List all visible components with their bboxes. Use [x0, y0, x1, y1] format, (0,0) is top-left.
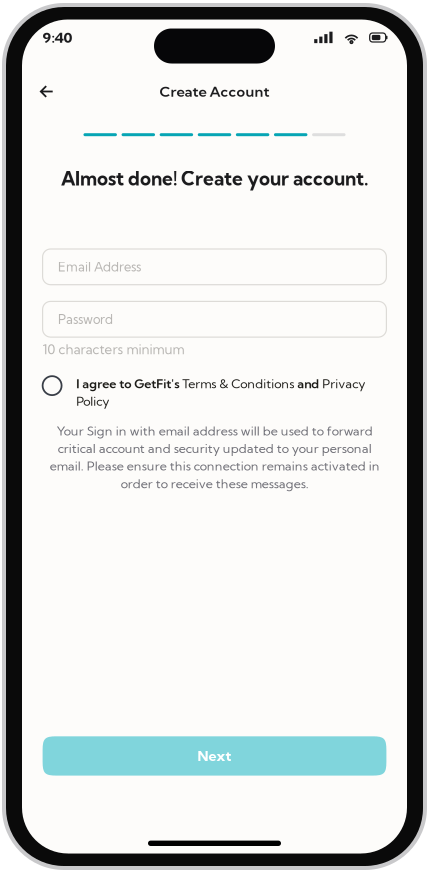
staticText: Your Sign in with email address will be …	[49, 423, 379, 491]
staticText: Email Address	[58, 259, 141, 275]
staticText: I agree to GetFit's Terms & Conditions a…	[76, 376, 365, 409]
staticText: Create Account	[159, 82, 269, 101]
button[interactable]: Back	[30, 76, 62, 106]
button[interactable]: I agree to GetFit's Terms & Conditions a…	[43, 376, 386, 409]
staticText: Next	[197, 747, 231, 765]
button[interactable]: Email Address	[43, 249, 386, 285]
button[interactable]: Next	[43, 736, 386, 776]
staticText: Almost done! Create your account.	[61, 167, 368, 190]
staticText: 9:40	[42, 28, 72, 47]
staticText: Password	[58, 311, 113, 327]
button[interactable]: Password	[43, 301, 386, 337]
staticText: 10 characters minimum	[43, 341, 185, 358]
